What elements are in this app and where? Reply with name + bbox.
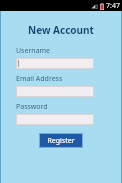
staticText: New Account [0, 23, 122, 37]
other: Signal strength [91, 3, 98, 10]
button[interactable] [16, 114, 94, 125]
staticText: Email Address [16, 74, 122, 84]
button[interactable]: Register [39, 133, 83, 148]
button[interactable] [16, 86, 94, 97]
staticText: Username [16, 46, 122, 56]
staticText: 7:47 [106, 1, 120, 11]
staticText: Password [16, 102, 122, 112]
other: Battery [100, 3, 104, 10]
button[interactable] [16, 58, 94, 69]
staticText: Register [47, 136, 75, 146]
